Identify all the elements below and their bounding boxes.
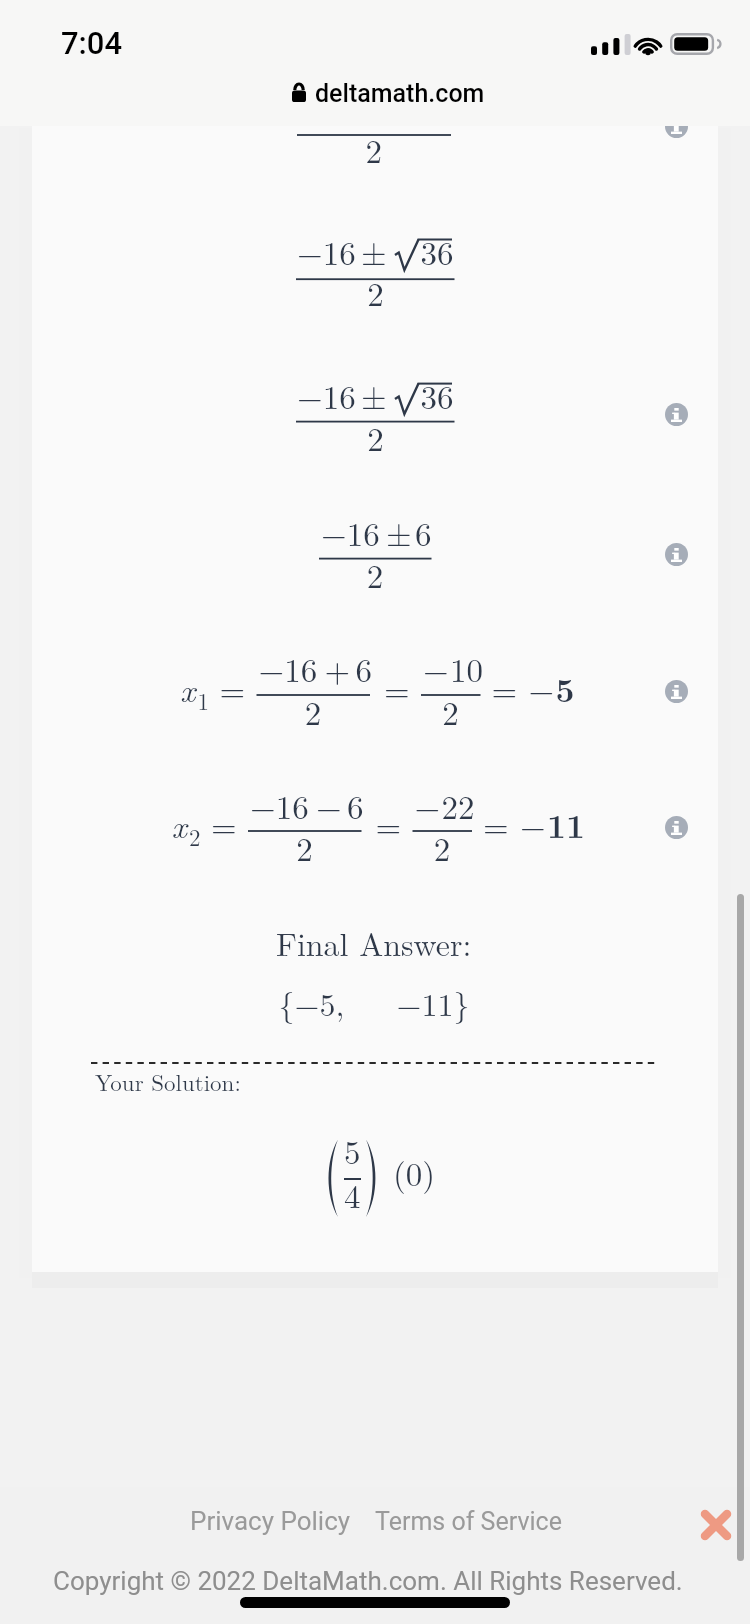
button[interactable]: Close	[694, 1503, 738, 1547]
staticText: Copyright © 2022 DeltaMath.com. All Righ…	[53, 1566, 683, 1596]
button[interactable]: More information	[665, 403, 688, 426]
staticText: Terms of Service	[375, 1507, 562, 1536]
button[interactable]: More information	[665, 115, 688, 138]
button[interactable]: Privacy Policy	[190, 1506, 351, 1536]
staticText: 7:04	[61, 25, 123, 61]
staticText: deltamath.com	[315, 79, 485, 108]
button[interactable]: More information	[665, 680, 688, 703]
staticText: Privacy Policy	[190, 1506, 351, 1536]
button[interactable]: Terms of Service	[375, 1507, 562, 1536]
button[interactable]: More information	[665, 543, 688, 566]
button[interactable]: More information	[665, 816, 688, 839]
